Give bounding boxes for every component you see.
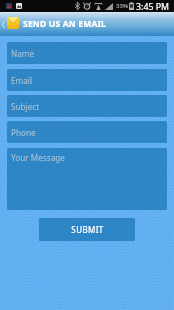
staticText: SUBMIT bbox=[71, 224, 104, 235]
button[interactable]: Your Message bbox=[7, 148, 167, 210]
button[interactable]: Name bbox=[7, 42, 167, 64]
button[interactable]: Back bbox=[0, 13, 7, 36]
staticText: Name bbox=[11, 48, 35, 59]
staticText: Subject bbox=[11, 101, 40, 112]
staticText: Your Message bbox=[11, 152, 65, 163]
button[interactable]: Email bbox=[7, 69, 167, 91]
button[interactable]: SUBMIT bbox=[39, 218, 135, 241]
staticText: Email bbox=[11, 75, 33, 86]
staticText: 3:45 PM bbox=[136, 1, 170, 13]
button[interactable]: Phone bbox=[7, 121, 167, 143]
button[interactable]: Subject bbox=[7, 95, 167, 117]
staticText: 33% bbox=[116, 2, 129, 10]
staticText: Phone bbox=[11, 127, 36, 138]
staticText: SEND US AN EMAIL bbox=[23, 18, 107, 30]
